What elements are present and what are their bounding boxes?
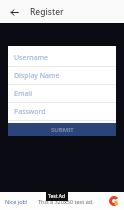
button[interactable]: Display Name: [8, 67, 116, 84]
staticText: Test Ad: [48, 193, 66, 200]
staticText: SUBMIT: [51, 126, 74, 134]
button[interactable]: SUBMIT: [8, 123, 116, 136]
button[interactable]: Password: [8, 103, 116, 120]
staticText: Nice job!: [5, 198, 28, 205]
staticText: This a 320x50 test ad.: [38, 198, 94, 205]
staticText: Email: [14, 89, 32, 99]
staticText: Username: [14, 53, 49, 63]
button[interactable]: Email: [8, 85, 116, 102]
button[interactable]: Nice job!: [0, 192, 124, 210]
staticText: Password: [14, 107, 46, 117]
button[interactable]: Back: [7, 5, 21, 19]
button[interactable]: Username: [8, 49, 116, 66]
staticText: Display Name: [14, 71, 60, 81]
staticText: Register: [30, 6, 64, 18]
